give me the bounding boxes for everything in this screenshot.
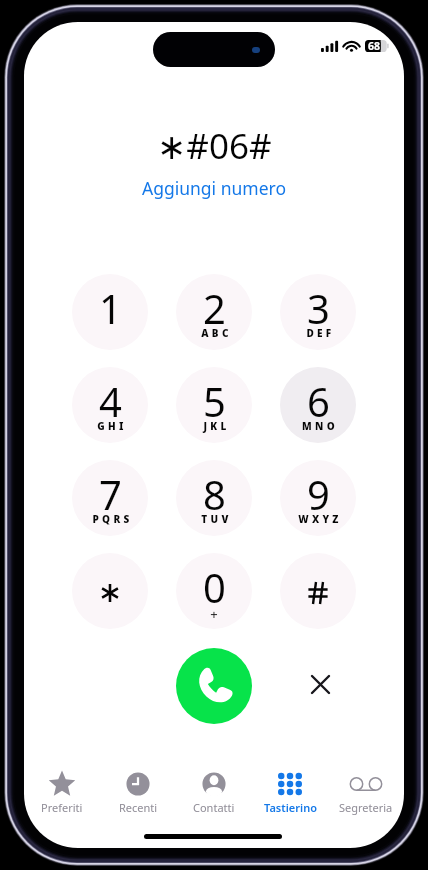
staticText: ABC	[201, 326, 232, 340]
button[interactable]: Recenti	[100, 757, 176, 819]
staticText: 0	[203, 560, 226, 614]
staticText: ∗#06#	[157, 122, 272, 170]
staticText: 6	[307, 374, 330, 428]
staticText: Tastierino	[264, 800, 317, 815]
staticText: 68	[368, 39, 381, 53]
button[interactable]: Elimina	[298, 662, 342, 706]
staticText: 9	[307, 467, 330, 521]
staticText: Recenti	[119, 800, 158, 815]
button[interactable]: Tastierino	[252, 757, 328, 819]
staticText: MNO	[302, 419, 338, 433]
staticText: 2	[203, 281, 226, 335]
button[interactable]: Preferiti	[24, 757, 100, 819]
staticText: GHI	[97, 419, 127, 433]
button[interactable]: Contatti	[176, 757, 252, 819]
button[interactable]: 8	[176, 460, 252, 536]
staticText: 8	[203, 467, 226, 521]
staticText: DEF	[306, 326, 335, 340]
button[interactable]: 2	[176, 274, 252, 350]
button[interactable]	[72, 553, 148, 629]
staticText: TUV	[201, 512, 232, 526]
staticText: 5	[203, 374, 226, 428]
staticText: 4	[99, 374, 122, 428]
button[interactable]: 0	[176, 553, 252, 629]
staticText: PQRS	[92, 512, 133, 526]
staticText: Aggiungi numero	[142, 176, 287, 200]
staticText: 3	[307, 281, 330, 335]
button[interactable]: 4	[72, 367, 148, 443]
staticText: JKL	[203, 419, 230, 433]
button[interactable]: Chiama	[176, 648, 252, 724]
button[interactable]: 1	[72, 274, 148, 350]
staticText: 1	[99, 281, 122, 335]
staticText: Contatti	[193, 800, 235, 815]
staticText: Preferiti	[41, 800, 83, 815]
button[interactable]: 3	[280, 274, 356, 350]
staticText: Segreteria	[339, 800, 393, 815]
button[interactable]: 5	[176, 367, 252, 443]
button[interactable]: 6	[280, 367, 356, 443]
staticText: 7	[99, 467, 122, 521]
button[interactable]: Aggiungi numero	[142, 176, 287, 200]
button[interactable]: 7	[72, 460, 148, 536]
button[interactable]: 9	[280, 460, 356, 536]
staticText: WXYZ	[298, 512, 342, 526]
button[interactable]	[280, 553, 356, 629]
staticText: +	[210, 605, 218, 623]
button[interactable]: Segreteria	[328, 757, 404, 819]
